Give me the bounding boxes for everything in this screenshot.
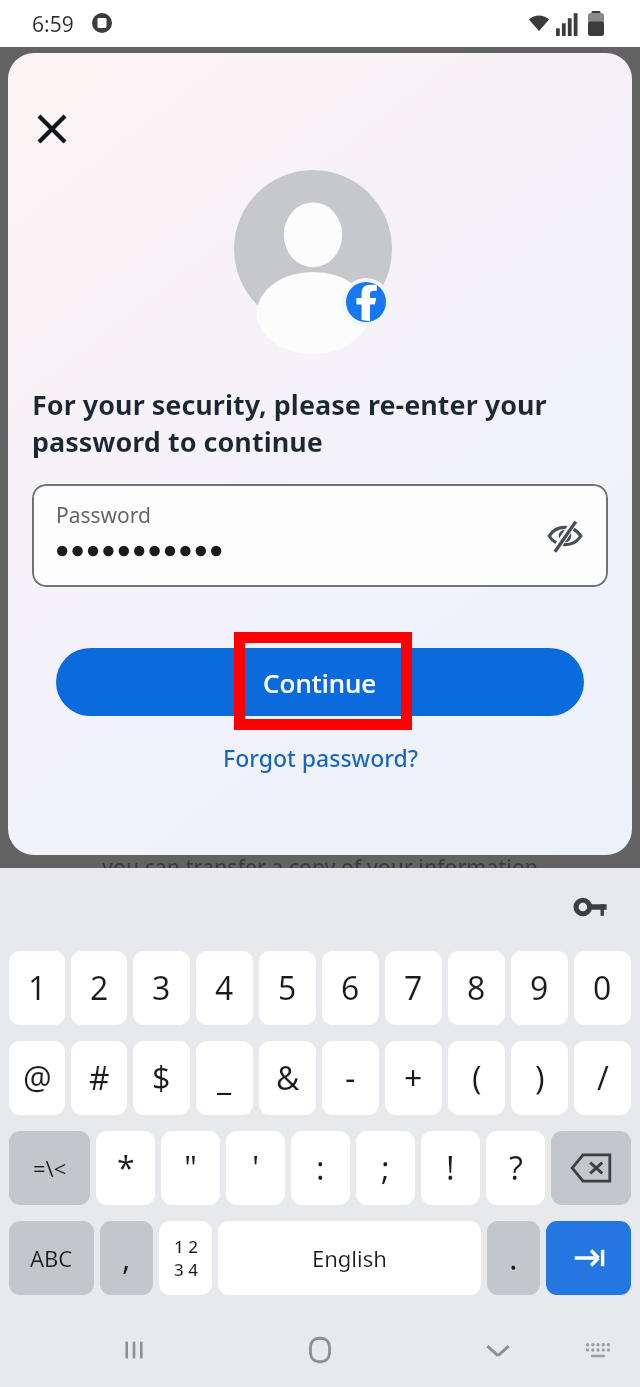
button[interactable]: $ [133,1041,190,1115]
staticText: @ [23,1056,52,1100]
button[interactable]: ! [421,1131,480,1205]
staticText: ABC [30,1243,73,1273]
button[interactable]: Show password [536,507,594,565]
button[interactable]: + [385,1041,442,1115]
button[interactable]: Enter [546,1221,631,1295]
staticText: ' [252,1146,260,1190]
button[interactable]: Hide keyboard [472,1324,524,1376]
staticText: & [276,1056,300,1100]
button[interactable]: Continue [56,648,584,716]
staticText: $ [152,1056,171,1100]
staticText: ( [472,1056,482,1100]
button[interactable]: 6 [322,951,379,1025]
button[interactable]: Password [32,484,608,587]
staticText: 1 [28,966,47,1010]
staticText: 7 [404,966,423,1010]
button[interactable]: ( [448,1041,505,1115]
button[interactable]: Backspace [551,1131,631,1205]
staticText: ) [535,1056,545,1100]
staticText: 6:59 [32,10,74,39]
staticText: : [316,1146,325,1190]
button[interactable]: Password manager [564,880,618,934]
button[interactable]: Close [24,101,80,157]
staticText: 8 [467,966,486,1010]
staticText: + [404,1056,423,1100]
button[interactable]: 7 [385,951,442,1025]
button[interactable]: 4 [196,951,253,1025]
staticText: / [597,1056,609,1100]
staticText: 9 [530,966,549,1010]
staticText: * [117,1146,135,1190]
button[interactable]: ' [226,1131,285,1205]
button[interactable]: 9 [511,951,568,1025]
staticText: , [122,1236,131,1280]
button[interactable]: : [291,1131,350,1205]
staticText: _ [217,1056,232,1100]
button[interactable]: * [96,1131,155,1205]
button[interactable]: _ [196,1041,253,1115]
button[interactable]: 3 [133,951,190,1025]
button[interactable]: ? [486,1131,545,1205]
staticText: - [345,1056,356,1100]
button[interactable]: =\< [9,1131,90,1205]
button[interactable]: 8 [448,951,505,1025]
staticText: For your security, please re-enter your … [32,386,584,460]
button[interactable]: Home [294,1324,346,1376]
button[interactable]: ) [511,1041,568,1115]
button[interactable]: 5 [259,951,316,1025]
button[interactable]: - [322,1041,379,1115]
staticText: Password [56,501,151,530]
staticText: " [184,1146,198,1190]
button[interactable]: # [71,1041,127,1115]
button[interactable]: . [487,1221,540,1295]
staticText: you can transfer a copy of your informat… [102,853,538,882]
button[interactable]: 0 [574,951,631,1025]
button[interactable]: , [100,1221,153,1295]
button[interactable]: ; [356,1131,415,1205]
button[interactable]: / [574,1041,631,1115]
staticText: Forgot password? [223,742,418,773]
button[interactable]: 2 [71,951,127,1025]
button[interactable]: & [259,1041,316,1115]
staticText: Continue [263,665,377,700]
staticText: 3 4 [174,1258,198,1281]
button[interactable]: " [161,1131,220,1205]
staticText: 2 [90,966,109,1010]
button[interactable]: 1 [9,951,65,1025]
staticText: ; [381,1146,390,1190]
button[interactable]: Change keyboard [572,1324,624,1376]
staticText: # [89,1056,110,1100]
button[interactable]: ABC [9,1221,94,1295]
button[interactable]: 1 2 [159,1221,212,1295]
button[interactable]: @ [9,1041,65,1115]
staticText: ? [509,1146,523,1190]
staticText: ! [446,1146,455,1190]
staticText: 0 [593,966,612,1010]
staticText: 4 [215,966,234,1010]
staticText: English [312,1243,387,1273]
staticText: 6 [341,966,360,1010]
staticText: =\< [33,1153,67,1183]
staticText: . [509,1236,518,1280]
button[interactable]: Recents [108,1324,160,1376]
staticText: 1 2 [174,1235,198,1258]
staticText: 3 [152,966,171,1010]
button[interactable]: Forgot password? [215,738,426,777]
button[interactable]: English [218,1221,481,1295]
staticText: 5 [278,966,297,1010]
